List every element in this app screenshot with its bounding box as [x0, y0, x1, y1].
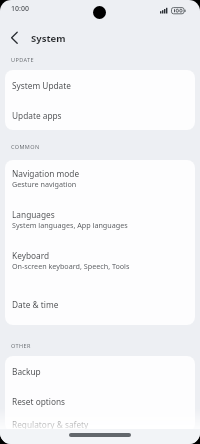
staticText: System languages, App languages — [12, 220, 128, 230]
button[interactable]: Keyboard — [5, 242, 195, 283]
staticText: Languages — [12, 209, 55, 220]
staticText: System Update — [12, 80, 71, 91]
staticText: Gesture navigation — [12, 179, 77, 189]
staticText: Date & time — [12, 299, 59, 310]
button[interactable]: System Update — [5, 70, 195, 100]
button[interactable]: Update apps — [5, 100, 195, 130]
staticText: OTHER — [11, 342, 31, 349]
button[interactable]: Regulatory & safety — [5, 416, 195, 432]
staticText: System — [31, 32, 66, 45]
staticText: Reset options — [12, 396, 66, 407]
staticText: Regulatory & safety — [12, 419, 89, 430]
staticText: UPDATE — [11, 56, 34, 63]
staticText: COMMON — [11, 143, 40, 150]
staticText: Keyboard — [12, 250, 50, 261]
staticText: On-screen keyboard, Speech, Tools — [12, 261, 130, 271]
button[interactable] — [0, 24, 28, 52]
button[interactable]: Navigation mode — [5, 160, 195, 201]
button[interactable]: Date & time — [5, 283, 195, 325]
button[interactable]: Backup — [5, 356, 195, 386]
button[interactable]: Reset options — [5, 386, 195, 416]
staticText: Navigation mode — [12, 168, 80, 179]
staticText: Backup — [12, 366, 41, 377]
button[interactable]: Languages — [5, 201, 195, 242]
staticText: Update apps — [12, 110, 62, 121]
staticText: 10:00 — [11, 4, 29, 14]
